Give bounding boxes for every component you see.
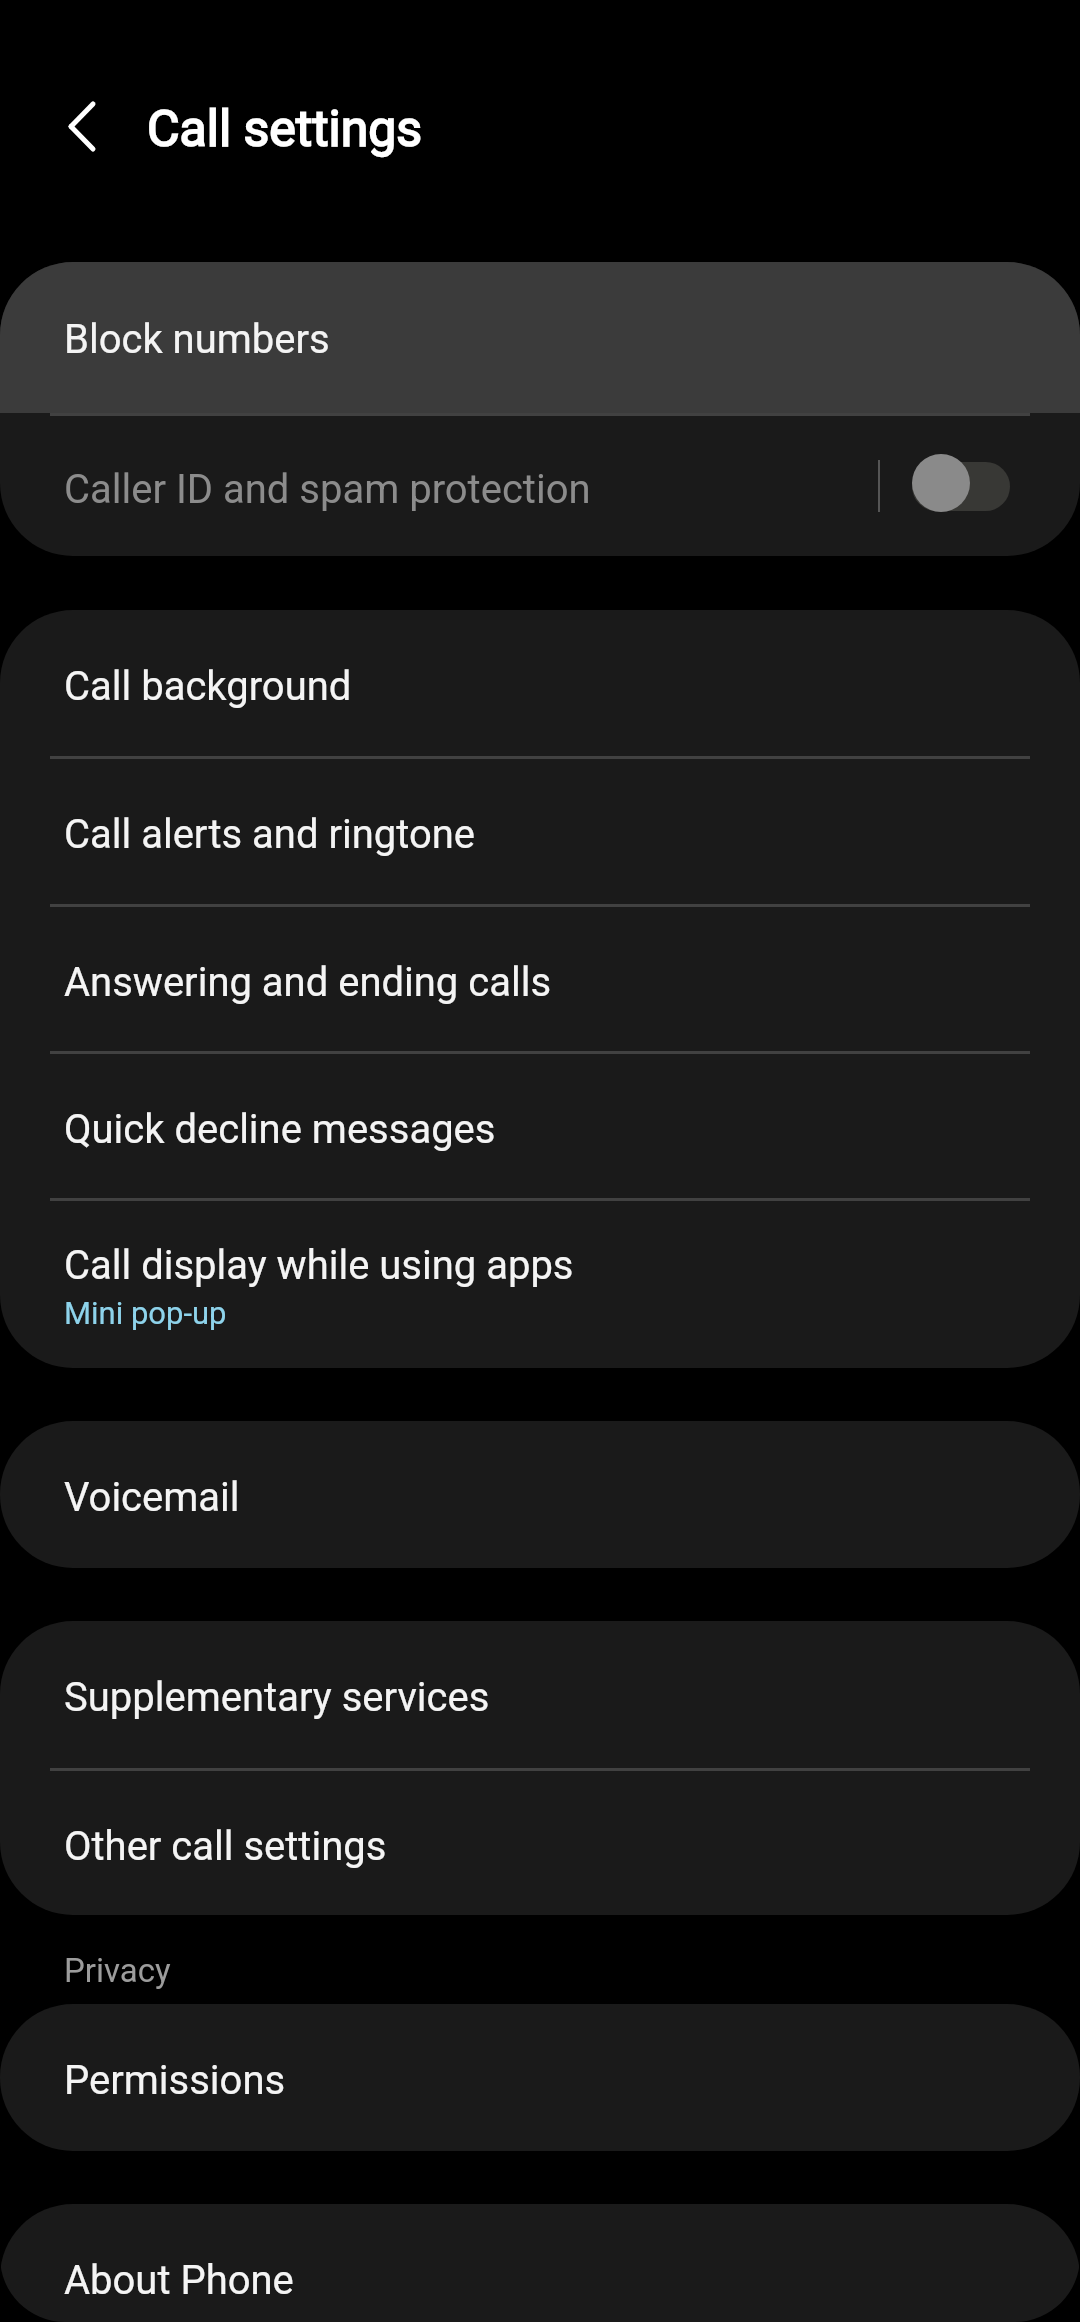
button[interactable]: Supplementary services (0, 1621, 1080, 1768)
staticText: Permissions (64, 2057, 286, 2104)
staticText: Quick decline messages (64, 1106, 496, 1153)
button[interactable]: Answering and ending calls (0, 907, 1080, 1051)
staticText: Answering and ending calls (64, 959, 552, 1006)
staticText: About Phone (64, 2257, 294, 2304)
staticText: Caller ID and spam protection (64, 466, 591, 513)
staticText: Supplementary services (64, 1674, 490, 1721)
button[interactable]: Caller ID and spam protection (0, 416, 1080, 556)
button[interactable]: Call display while using apps (0, 1201, 1080, 1368)
staticText: Voicemail (64, 1474, 240, 1521)
staticText: Block numbers (64, 316, 330, 363)
button[interactable]: Back (42, 86, 132, 176)
button[interactable]: About Phone (0, 2204, 1080, 2322)
staticText: Call background (64, 663, 352, 710)
button[interactable]: Quick decline messages (0, 1054, 1080, 1198)
button[interactable]: Call alerts and ringtone (0, 759, 1080, 904)
button[interactable]: Caller ID and spam protection (912, 462, 1010, 511)
staticText: Privacy (64, 1951, 171, 1990)
button[interactable]: Block numbers (0, 262, 1080, 413)
button[interactable]: Call background (0, 610, 1080, 756)
staticText: Call display while using apps (64, 1242, 574, 1289)
staticText: Other call settings (64, 1823, 387, 1870)
staticText: Call settings (147, 100, 423, 159)
button[interactable]: Permissions (0, 2004, 1080, 2151)
staticText: Call alerts and ringtone (64, 811, 476, 858)
button[interactable]: Other call settings (0, 1771, 1080, 1915)
staticText: Mini pop-up (64, 1295, 227, 1331)
button[interactable]: Voicemail (0, 1421, 1080, 1568)
